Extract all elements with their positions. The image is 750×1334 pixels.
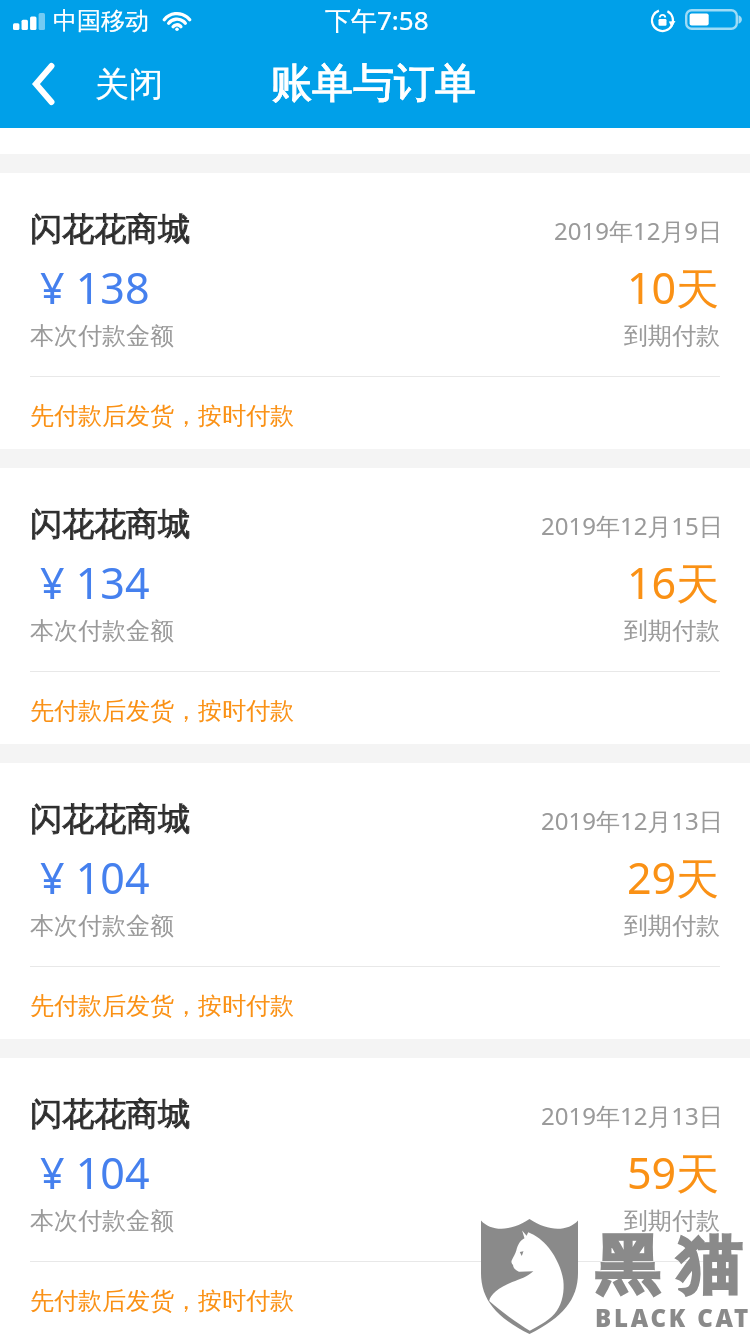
staticText: 2019年12月13日 [541,804,723,837]
staticText: 先付款后发货，按时付款 [30,401,294,431]
staticText: ¥ 134 [40,553,150,612]
staticText: 闪花花商城 [30,209,190,249]
staticText: 到期付款 [624,1206,720,1236]
staticText: BLACK CAT [595,1301,750,1334]
staticText: 先付款后发货，按时付款 [30,696,294,726]
staticText: 到期付款 [624,321,720,351]
staticText: 本次付款金额 [30,1206,174,1236]
other: Back [33,62,54,106]
staticText: ¥ 104 [40,848,150,907]
staticText: 2019年12月15日 [541,509,723,542]
staticText: 闪花花商城 [30,799,190,839]
staticText: 本次付款金额 [30,616,174,646]
staticText: 先付款后发货，按时付款 [30,1286,294,1316]
staticText: 16天 [627,553,720,612]
staticText: 到期付款 [624,911,720,941]
staticText: 闪花花商城 [30,1094,190,1134]
button[interactable]: Back [0,54,179,114]
staticText: 2019年12月13日 [541,1099,723,1132]
button[interactable]: 闪花花商城 [0,763,750,1039]
staticText: 到期付款 [624,616,720,646]
staticText: 本次付款金额 [30,911,174,941]
staticText: 账单与订单 [271,58,476,110]
button[interactable]: 闪花花商城 [0,173,750,449]
staticText: 关闭 [95,63,163,106]
staticText: 闪花花商城 [30,504,190,544]
staticText: 闪花花商城 [30,799,190,839]
staticText: 先付款后发货，按时付款 [30,991,294,1021]
button[interactable]: 闪花花商城 [0,468,750,744]
staticText: ¥ 104 [40,1143,150,1202]
staticText: 本次付款金额 [30,321,174,351]
staticText: 黑猫 [586,1225,750,1306]
staticText: 闪花花商城 [30,1094,190,1134]
staticText: 闪花花商城 [30,209,190,249]
staticText: 闪花花商城 [30,504,190,544]
staticText: ¥ 138 [40,258,150,317]
staticText: 2019年12月9日 [554,214,723,247]
staticText: 下午7:58 [325,2,429,38]
staticText: 29天 [627,848,720,907]
staticText: 账单与订单 [271,58,476,110]
staticText: 中国移动 [53,6,149,36]
button[interactable]: 闪花花商城 [0,1058,750,1334]
staticText: 10天 [627,258,720,317]
staticText: 59天 [627,1143,720,1202]
